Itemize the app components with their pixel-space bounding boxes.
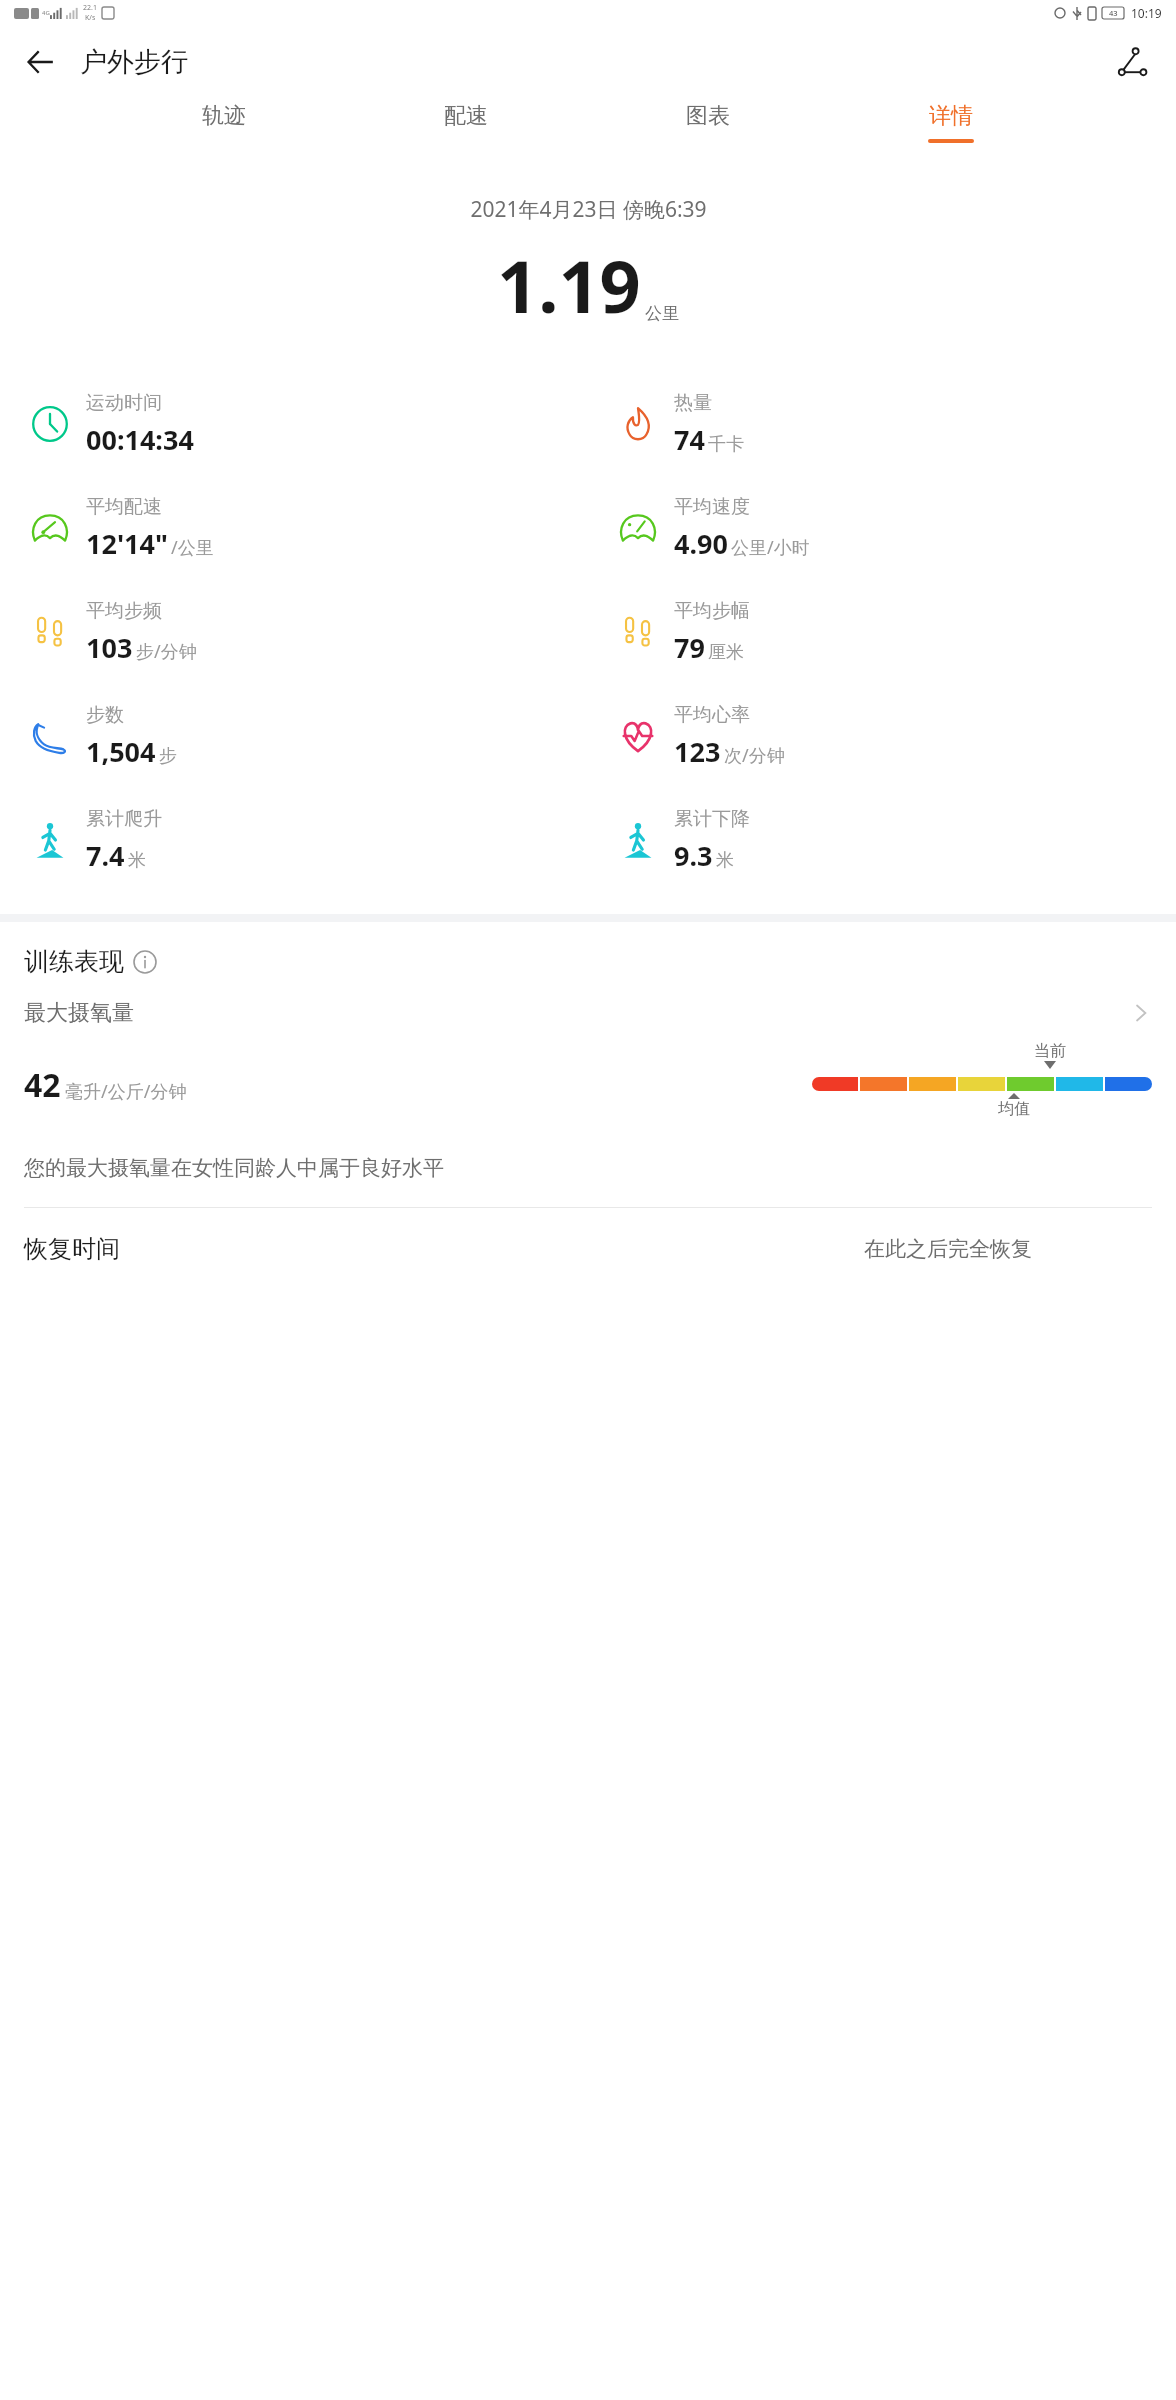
staticText: 在此之后完全恢复 (864, 1236, 1032, 1262)
button[interactable]: 训练表现 (24, 946, 157, 977)
staticText: 累计爬升 (86, 807, 162, 831)
button[interactable]: 累计下降 (588, 788, 1176, 892)
staticText: 图表 (686, 102, 730, 130)
button[interactable]: 平均速度 (588, 476, 1176, 580)
button[interactable]: 配速 (438, 98, 494, 147)
staticText: 步数 (86, 703, 124, 727)
staticText: 12'14" (86, 525, 168, 562)
staticText: 43 (1109, 8, 1118, 18)
staticText: 103 (86, 629, 133, 666)
staticText: 00:14:34 (86, 421, 194, 458)
button[interactable]: 平均步频 (0, 580, 588, 684)
staticText: 次/分钟 (724, 743, 785, 768)
staticText: 2021年4月23日 傍晚6:39 (470, 195, 707, 224)
staticText: 平均速度 (674, 495, 750, 519)
staticText: 最大摄氧量 (24, 999, 134, 1027)
staticText: K/s (85, 13, 96, 23)
button[interactable]: 户外步行 (80, 45, 188, 79)
staticText: 训练表现 (24, 946, 124, 977)
staticText: 1,504 (86, 733, 156, 770)
staticText: 42 (24, 1063, 61, 1107)
staticText: 123 (674, 733, 721, 770)
button[interactable]: 累计爬升 (0, 788, 588, 892)
staticText: 步 (159, 745, 177, 768)
staticText: 厘米 (708, 641, 744, 664)
staticText: 米 (716, 849, 734, 872)
button[interactable]: 平均步幅 (588, 580, 1176, 684)
staticText: 公里/小时 (731, 535, 810, 560)
button[interactable]: 最大摄氧量 (24, 999, 1152, 1027)
staticText: 配速 (444, 102, 488, 130)
staticText: 您的最大摄氧量在女性同龄人中属于良好水平 (24, 1155, 444, 1181)
staticText: 79 (674, 629, 705, 666)
button[interactable]: Back (12, 34, 68, 90)
staticText: 运动时间 (86, 391, 162, 415)
staticText: 均值 (998, 1099, 1030, 1119)
staticText: /公里 (171, 535, 214, 560)
button[interactable]: 轨迹 (196, 98, 252, 147)
staticText: 累计下降 (674, 807, 750, 831)
staticText: 平均步频 (86, 599, 162, 623)
button[interactable]: 图表 (680, 98, 736, 147)
button[interactable]: 热量 (588, 372, 1176, 476)
button[interactable]: Share (1104, 34, 1160, 90)
staticText: 米 (128, 849, 146, 872)
button[interactable]: 步数 (0, 684, 588, 788)
staticText: 7.4 (86, 837, 125, 874)
staticText: 详情 (929, 102, 973, 130)
staticText: 公里 (645, 303, 679, 324)
staticText: 10:19 (1131, 5, 1162, 21)
staticText: 步/分钟 (136, 639, 197, 664)
staticText: 平均步幅 (674, 599, 750, 623)
button[interactable]: 恢复时间 (24, 1234, 1152, 1264)
staticText: 当前 (1034, 1041, 1066, 1061)
staticText: 4.90 (674, 525, 728, 562)
staticText: 22.1 (83, 3, 97, 13)
button[interactable]: 详情 (922, 98, 980, 147)
staticText: 恢复时间 (24, 1234, 120, 1264)
staticText: 轨迹 (202, 102, 246, 130)
button[interactable]: 运动时间 (0, 372, 588, 476)
button[interactable]: 平均心率 (588, 684, 1176, 788)
staticText: 平均心率 (674, 703, 750, 727)
button[interactable]: 平均配速 (0, 476, 588, 580)
staticText: 热量 (674, 391, 712, 415)
staticText: 千卡 (708, 433, 744, 456)
staticText: 平均配速 (86, 495, 162, 519)
staticText: 4G (42, 9, 50, 17)
staticText: 74 (674, 421, 705, 458)
staticText: 毫升/公斤/分钟 (65, 1079, 187, 1104)
staticText: 1.19 (497, 236, 641, 334)
staticText: 9.3 (674, 837, 713, 874)
